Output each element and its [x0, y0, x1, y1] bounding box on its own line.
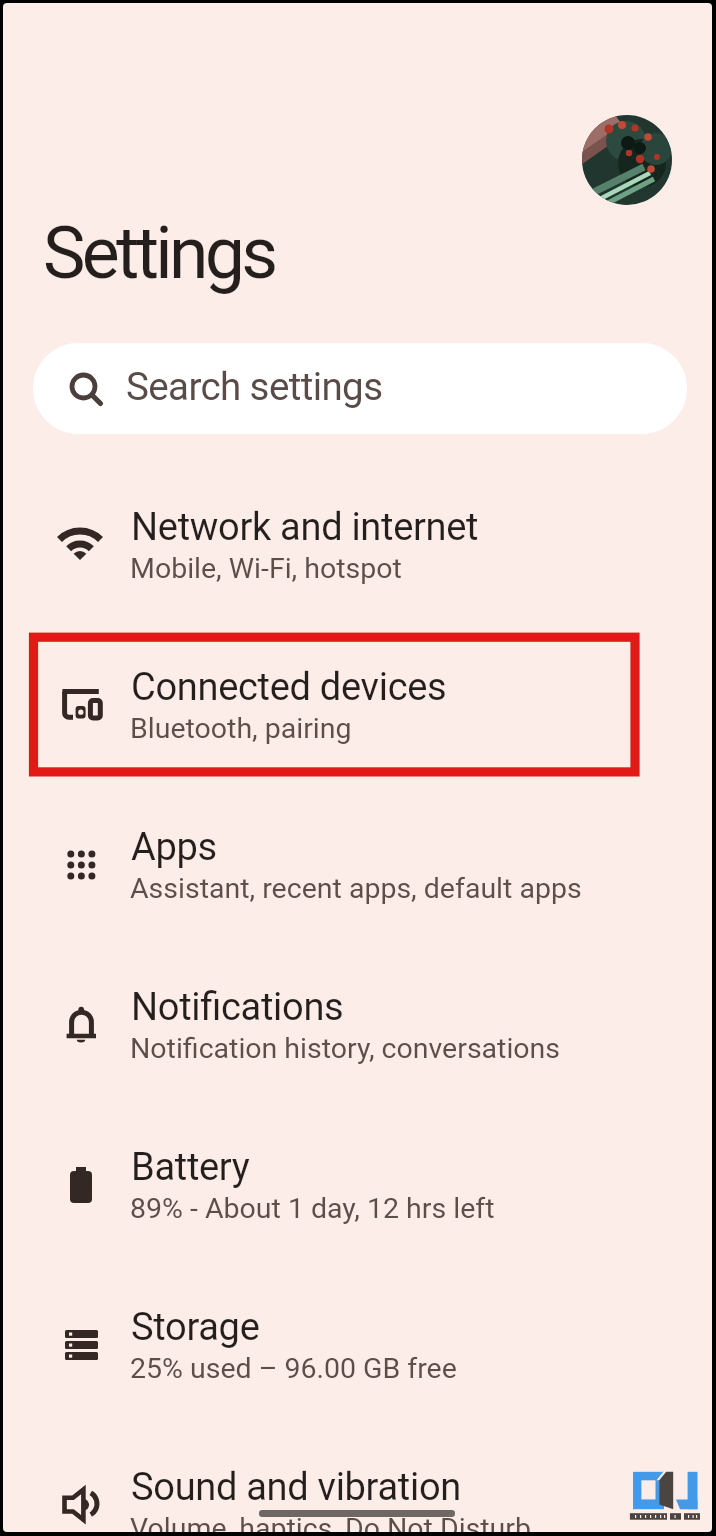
staticText: Apps — [131, 825, 217, 870]
staticText: 25% used – 96.00 GB free — [130, 1352, 457, 1385]
staticText: Storage — [131, 1305, 260, 1350]
staticText: Connected devices — [131, 665, 447, 710]
staticText: Notification history, conversations — [130, 1032, 561, 1065]
staticText: Notifications — [131, 985, 344, 1030]
staticText: Volume, haptics, Do Not Disturb — [130, 1512, 531, 1532]
staticText: Bluetooth, pairing — [130, 712, 352, 745]
staticText: 89% - About 1 day, 12 hrs left — [130, 1192, 495, 1225]
staticText: Sound and vibration — [131, 1465, 461, 1510]
staticText: Assistant, recent apps, default apps — [130, 872, 582, 905]
staticText: Search settings — [126, 364, 383, 409]
staticText: Mobile, Wi-Fi, hotspot — [130, 552, 402, 585]
staticText: Battery — [131, 1145, 250, 1190]
staticText: Network and internet — [131, 505, 479, 550]
staticText: Settings — [43, 212, 275, 296]
